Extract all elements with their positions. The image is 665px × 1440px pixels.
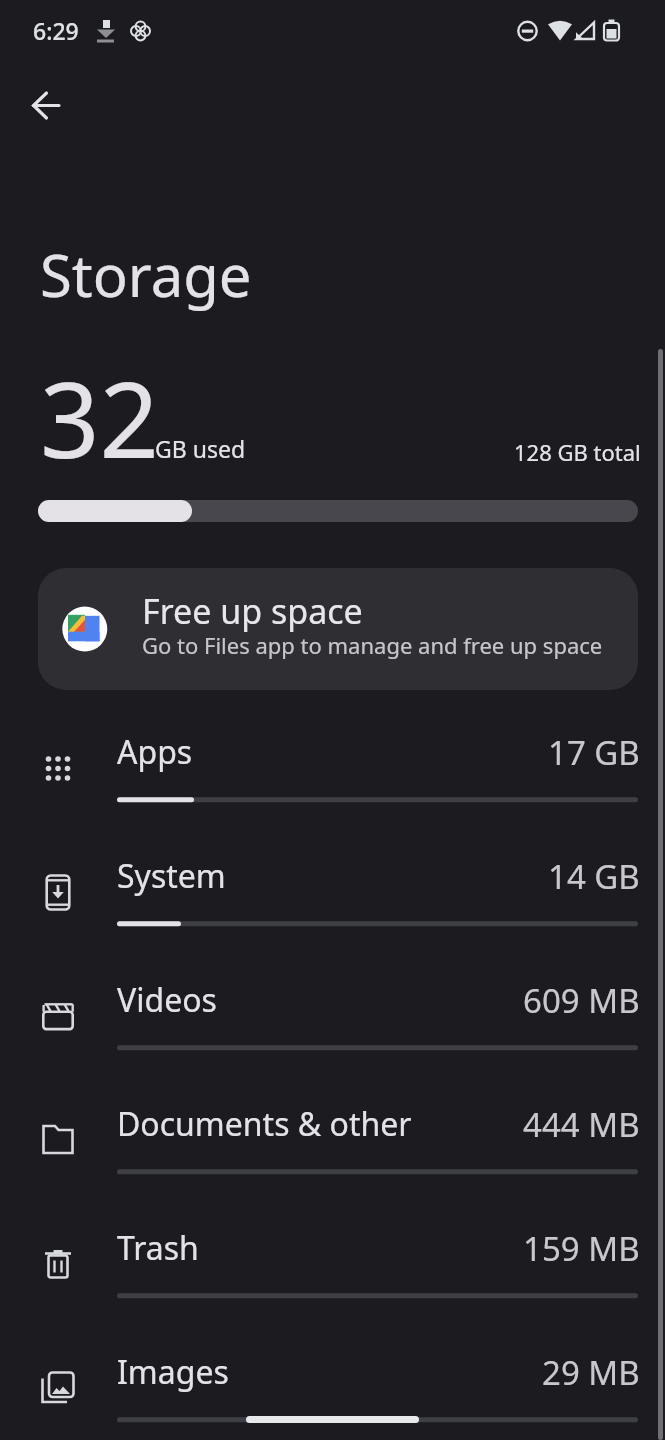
- staticText: 32: [40, 347, 159, 489]
- staticText: 444 MB: [523, 1102, 640, 1147]
- button[interactable]: Apps: [0, 715, 665, 827]
- staticText: Free up space: [142, 588, 363, 634]
- staticText: 159 MB: [523, 1226, 640, 1271]
- staticText: Storage: [40, 235, 252, 314]
- staticText: Apps: [117, 730, 193, 774]
- button[interactable]: Trash: [0, 1211, 665, 1323]
- staticText: 609 MB: [523, 978, 640, 1023]
- staticText: 14 GB: [548, 854, 640, 899]
- staticText: GB used: [155, 433, 246, 464]
- button[interactable]: Videos: [0, 963, 665, 1075]
- staticText: 17 GB: [548, 730, 640, 775]
- button[interactable]: Documents & other: [0, 1087, 665, 1199]
- staticText: 128 GB total: [514, 437, 641, 467]
- staticText: 6:29: [33, 15, 79, 46]
- staticText: Go to Files app to manage and free up sp…: [142, 630, 603, 660]
- button[interactable]: [22, 81, 70, 129]
- button[interactable]: Images: [0, 1335, 665, 1440]
- staticText: Documents & other: [117, 1102, 412, 1146]
- staticText: Videos: [117, 978, 217, 1022]
- staticText: System: [117, 854, 226, 898]
- staticText: Images: [117, 1350, 229, 1394]
- staticText: 29 MB: [542, 1350, 640, 1395]
- staticText: Trash: [117, 1226, 199, 1270]
- button[interactable]: System: [0, 839, 665, 951]
- button[interactable]: Free up space: [38, 568, 638, 690]
